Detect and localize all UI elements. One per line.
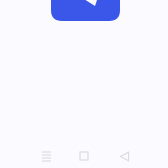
- button[interactable]: Home: [72, 144, 96, 168]
- button[interactable]: Loading indicator: [51, 0, 120, 21]
- button[interactable]: Back: [112, 144, 136, 168]
- button[interactable]: Recent apps: [34, 144, 58, 168]
